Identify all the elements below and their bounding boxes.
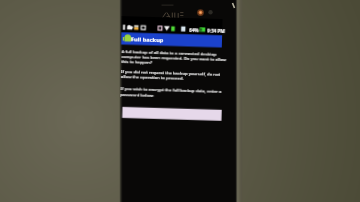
staticText: Full backup <box>131 35 164 44</box>
button[interactable]: Full backup <box>131 35 164 44</box>
staticText: allow the operation to proceed. <box>121 74 184 82</box>
staticText: computer has been requested. Do you want… <box>121 54 226 63</box>
staticText: password below: <box>120 92 154 99</box>
staticText: this to happen? <box>121 59 152 66</box>
staticText: If you wish to encrypt the full backup d… <box>120 86 221 95</box>
staticText: 9:34 PM <box>207 27 225 34</box>
staticText: If you did not request the backup yourse… <box>121 69 221 78</box>
staticText: A full backup of all data to a connected… <box>121 49 217 58</box>
staticText: 64% <box>189 27 199 33</box>
